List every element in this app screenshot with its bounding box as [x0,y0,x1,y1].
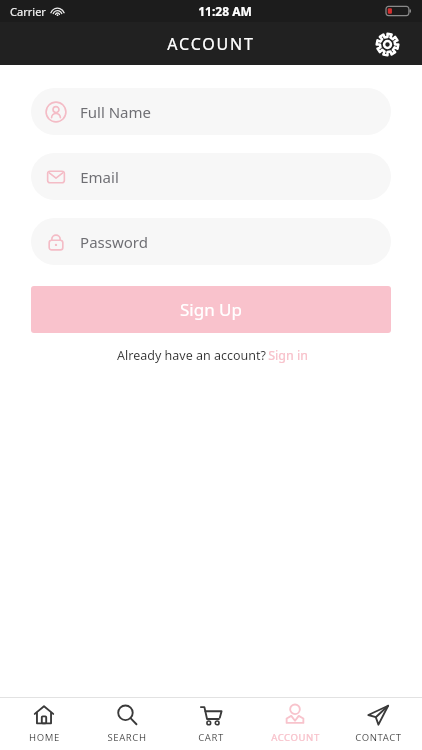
button[interactable]: Password [31,218,391,265]
button[interactable]: Sign Up [31,286,391,333]
staticText: Full Name [80,102,151,122]
button[interactable]: Full Name [31,88,391,135]
staticText: Carrier [10,4,46,19]
button[interactable]: CART [171,698,251,750]
button[interactable]: SEARCH [87,698,167,750]
staticText: CART [198,731,224,744]
staticText: HOME [29,731,60,744]
staticText: SEARCH [107,731,147,744]
staticText: Password [80,232,148,252]
button[interactable]: ACCOUNT [255,698,335,750]
staticText: ACCOUNT [271,731,320,744]
button[interactable]: Sign in [268,347,308,364]
button[interactable]: CONTACT [338,698,418,750]
staticText: Email [80,167,119,187]
staticText: ACCOUNT [167,33,255,55]
staticText: Sign Up [180,298,242,321]
staticText: Already have an account? [115,347,268,364]
button[interactable]: Email [31,153,391,200]
staticText: Sign in [268,347,308,364]
button[interactable]: HOME [4,698,84,750]
staticText: 11:28 AM [198,3,252,19]
button[interactable]: Settings [370,27,404,61]
staticText: CONTACT [355,731,402,744]
